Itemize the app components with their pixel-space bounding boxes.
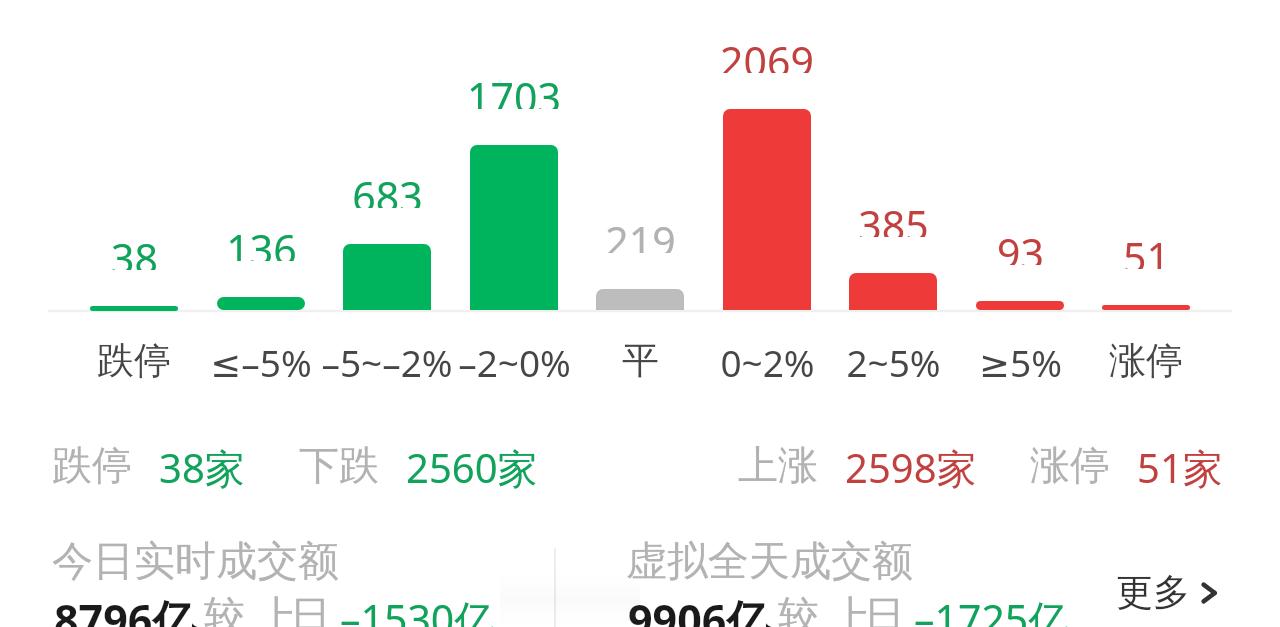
- staticText: 2598家: [845, 440, 977, 495]
- staticText: 更多: [1116, 569, 1190, 616]
- staticText: –2~0%: [458, 337, 571, 387]
- staticText: 下跌: [299, 440, 379, 490]
- staticText: 涨停: [1030, 440, 1110, 490]
- staticText: 1703: [467, 69, 561, 109]
- staticText: 上: [830, 591, 871, 627]
- staticText: 日: [290, 591, 331, 627]
- staticText: 9906亿,: [628, 590, 782, 627]
- staticText: 上涨: [738, 440, 818, 490]
- button[interactable]: 2~5% 385 只: [830, 16, 956, 386]
- staticText: 平: [622, 337, 659, 384]
- staticText: ≥5%: [979, 337, 1062, 387]
- staticText: 日: [864, 591, 905, 627]
- button[interactable]: –5~–2% 683 只: [324, 16, 450, 386]
- button[interactable]: 跌停 38 只: [71, 16, 197, 386]
- staticText: 51: [1123, 229, 1170, 269]
- staticText: 38: [111, 230, 158, 270]
- staticText: 385: [858, 197, 929, 237]
- staticText: 跌停: [52, 440, 132, 490]
- staticText: 93: [997, 225, 1044, 265]
- staticText: 51家: [1137, 440, 1223, 495]
- staticText: 跌停: [97, 337, 171, 384]
- button[interactable]: 更多: [1112, 563, 1222, 622]
- staticText: 今日实时成交额: [52, 536, 339, 588]
- button[interactable]: ≤–5% 136 只: [198, 16, 324, 386]
- button[interactable]: 平 219 只: [577, 16, 703, 386]
- staticText: 较: [204, 591, 245, 627]
- staticText: –1530亿,: [340, 591, 507, 627]
- staticText: 虚拟全天成交额: [626, 536, 913, 588]
- button[interactable]: ≥5% 93 只: [957, 16, 1083, 386]
- staticText: 上: [256, 591, 297, 627]
- staticText: 2~5%: [846, 337, 941, 387]
- staticText: 涨停: [1109, 337, 1183, 384]
- staticText: 0~2%: [720, 337, 815, 387]
- button[interactable]: 涨停 51 只: [1083, 16, 1209, 386]
- staticText: 38家: [159, 440, 245, 495]
- staticText: 136: [226, 221, 297, 261]
- button[interactable]: –2~0% 1703 只: [451, 16, 577, 386]
- staticText: 8796亿,: [54, 590, 208, 627]
- staticText: 2560家: [406, 440, 538, 495]
- staticText: 2069: [720, 33, 814, 73]
- staticText: –5~–2%: [321, 337, 453, 387]
- staticText: 较: [778, 591, 819, 627]
- staticText: 219: [605, 213, 676, 253]
- staticText: –1725亿,: [914, 591, 1081, 627]
- staticText: 683: [352, 168, 423, 208]
- button[interactable]: 0~2% 2069 只: [704, 16, 830, 386]
- staticText: ≤–5%: [210, 337, 312, 387]
